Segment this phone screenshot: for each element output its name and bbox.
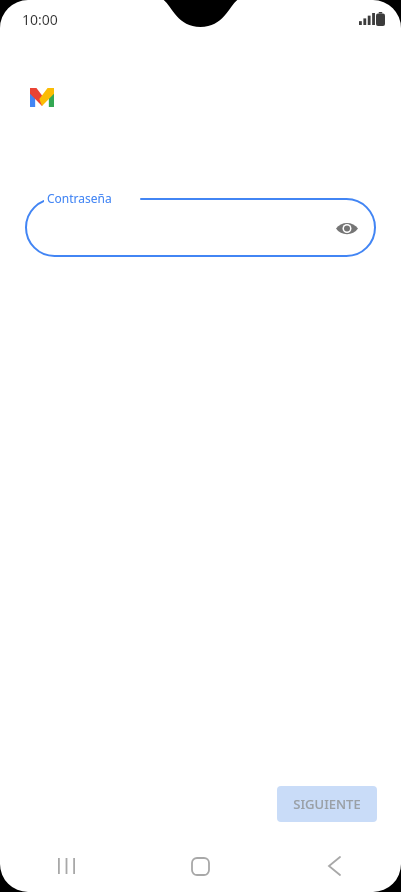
staticText: Contraseña (47, 190, 112, 206)
other: Gmail (30, 88, 54, 107)
button[interactable]: Mostrar contraseña (25, 198, 376, 257)
button[interactable]: SIGUIENTE (277, 786, 377, 822)
button[interactable]: Mostrar contraseña (331, 212, 363, 244)
button[interactable]: Recientes (0, 840, 133, 892)
staticText: 10:00 (22, 10, 58, 29)
button[interactable]: Inicio (133, 840, 267, 892)
button[interactable]: Atrás (267, 840, 401, 892)
staticText: SIGUIENTE (293, 795, 361, 813)
